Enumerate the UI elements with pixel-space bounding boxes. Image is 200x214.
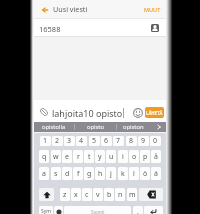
- button[interactable]: z: [60, 188, 70, 201]
- button[interactable]: 5: [89, 136, 100, 146]
- button[interactable]: Back: [38, 3, 51, 16]
- button[interactable]: Emoji: [132, 107, 144, 119]
- staticText: a: [42, 169, 46, 179]
- button[interactable]: l: [129, 167, 139, 180]
- button[interactable]: q: [39, 150, 49, 163]
- staticText: z: [63, 190, 67, 200]
- button[interactable]: opisto: [74, 122, 116, 132]
- staticText: o: [132, 152, 137, 162]
- button[interactable]: j: [106, 167, 116, 180]
- button[interactable]: u: [106, 150, 116, 163]
- button[interactable]: e: [62, 150, 72, 163]
- staticText: 3: [67, 136, 72, 146]
- button[interactable]: ö: [140, 167, 150, 180]
- button[interactable]: Suomi: [64, 206, 131, 214]
- button[interactable]: Sym: [39, 206, 53, 214]
- staticText: .: [137, 207, 139, 214]
- button[interactable]: r: [73, 150, 83, 163]
- staticText: j: [110, 169, 112, 179]
- button[interactable]: h: [95, 167, 105, 180]
- button[interactable]: v: [93, 188, 103, 201]
- button[interactable]: Choose contact: [149, 22, 160, 33]
- button[interactable]: c: [82, 188, 92, 201]
- staticText: 16588: [39, 24, 61, 34]
- button[interactable]: g: [84, 167, 94, 180]
- staticText: u: [109, 152, 114, 162]
- button[interactable]: å: [151, 150, 161, 163]
- button[interactable]: b: [104, 188, 114, 201]
- button[interactable]: 6: [101, 136, 112, 146]
- staticText: 2: [55, 136, 60, 146]
- staticText: t: [88, 152, 91, 162]
- button[interactable]: a: [39, 167, 49, 180]
- staticText: c: [85, 190, 89, 200]
- staticText: q: [42, 152, 47, 162]
- staticText: ö: [143, 169, 148, 179]
- button[interactable]: More suggestions: [151, 122, 166, 132]
- staticText: 0: [153, 136, 158, 146]
- button[interactable]: 4: [76, 136, 87, 146]
- button[interactable]: Enter: [144, 206, 163, 214]
- button[interactable]: 8: [126, 136, 137, 146]
- button[interactable]: 3: [64, 136, 75, 146]
- button[interactable]: 1: [40, 136, 51, 146]
- staticText: h: [98, 169, 103, 179]
- button[interactable]: ä: [151, 167, 161, 180]
- staticText: å: [154, 152, 158, 162]
- button[interactable]: t: [84, 150, 94, 163]
- button[interactable]: y: [95, 150, 105, 163]
- button[interactable]: Shift: [39, 188, 54, 201]
- button[interactable]: x: [71, 188, 81, 201]
- staticText: i: [122, 152, 124, 162]
- button[interactable]: m: [127, 188, 137, 201]
- staticText: Uusi viesti: [53, 4, 88, 14]
- staticText: 8: [129, 136, 134, 146]
- button[interactable]: w: [51, 150, 61, 163]
- button[interactable]: MUUT: [139, 2, 166, 17]
- button[interactable]: Attach: [36, 104, 51, 119]
- staticText: m: [129, 190, 136, 200]
- button[interactable]: 7: [113, 136, 124, 146]
- staticText: 6: [104, 136, 109, 146]
- button[interactable]: Backspace: [139, 188, 163, 201]
- staticText: k: [121, 169, 125, 179]
- staticText: x: [74, 190, 78, 200]
- staticText: MUUT: [144, 6, 161, 13]
- button[interactable]: LÄHETÄ: [145, 107, 164, 118]
- button[interactable]: o: [129, 150, 139, 163]
- staticText: r: [77, 152, 80, 162]
- staticText: y: [98, 152, 102, 162]
- button[interactable]: p: [140, 150, 150, 163]
- staticText: opistolla: [42, 123, 66, 131]
- staticText: Suomi: [91, 209, 105, 214]
- staticText: 5: [92, 136, 97, 146]
- button[interactable]: n: [115, 188, 125, 201]
- staticText: 4: [79, 136, 84, 146]
- staticText: l: [133, 169, 135, 179]
- button[interactable]: opiston: [116, 122, 151, 132]
- staticText: b: [107, 190, 112, 200]
- staticText: LÄHETÄ: [146, 110, 163, 116]
- staticText: g: [87, 169, 92, 179]
- staticText: opisto: [87, 123, 104, 131]
- staticText: d: [65, 169, 70, 179]
- button[interactable]: 2: [52, 136, 63, 146]
- staticText: lahjoita10 opisto: [52, 107, 123, 119]
- staticText: Sym: [41, 208, 51, 214]
- staticText: opiston: [123, 123, 144, 131]
- button[interactable]: .: [133, 206, 143, 214]
- button[interactable]: 9: [138, 136, 149, 146]
- button[interactable]: Voice input: [54, 206, 63, 214]
- button[interactable]: opistolla: [34, 122, 74, 132]
- staticText: 7: [116, 136, 121, 146]
- staticText: ä: [154, 169, 158, 179]
- button[interactable]: i: [118, 150, 128, 163]
- button[interactable]: f: [73, 167, 83, 180]
- button[interactable]: s: [51, 167, 61, 180]
- staticText: 1: [43, 136, 48, 146]
- button[interactable]: 0: [150, 136, 161, 146]
- staticText: e: [65, 152, 69, 162]
- button[interactable]: k: [118, 167, 128, 180]
- button[interactable]: d: [62, 167, 72, 180]
- staticText: f: [77, 169, 80, 179]
